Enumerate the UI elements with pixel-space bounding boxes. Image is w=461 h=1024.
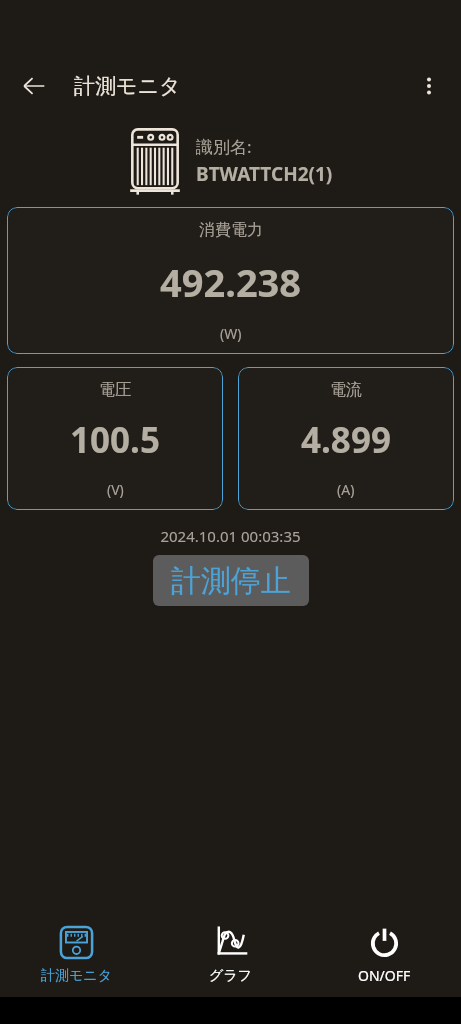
staticText: 4.899	[301, 416, 391, 464]
button[interactable]: Back	[12, 64, 56, 108]
staticText: 消費電力	[199, 220, 263, 240]
staticText: 100.5	[70, 416, 160, 464]
button[interactable]: 計測停止	[153, 555, 309, 606]
button[interactable]: More options	[407, 64, 451, 108]
button[interactable]: Power ON OFF	[307, 922, 461, 985]
button[interactable]: 消費電力	[7, 207, 454, 354]
staticText: (A)	[337, 480, 355, 499]
staticText: 計測モニタ	[74, 73, 181, 99]
staticText: 492.238	[160, 256, 302, 308]
staticText: 計測停止	[171, 562, 291, 600]
staticText: 識別名:	[196, 135, 252, 158]
button[interactable]: 電圧	[7, 367, 223, 510]
staticText: (V)	[107, 480, 124, 499]
staticText: 計測モニタ	[41, 967, 112, 985]
staticText: 2024.10.01 00:03:35	[0, 526, 461, 546]
staticText: グラフ	[209, 967, 252, 985]
staticText: (W)	[220, 324, 242, 343]
other: Graph	[211, 923, 250, 962]
staticText: 電圧	[99, 380, 131, 400]
staticText: BTWATTCH2(1)	[196, 161, 333, 187]
other: Measurement monitor	[57, 923, 96, 962]
button[interactable]: Graph	[153, 923, 307, 985]
staticText: ON/OFF	[358, 966, 411, 985]
button[interactable]: Measurement monitor	[0, 923, 153, 985]
staticText: 電流	[330, 380, 362, 400]
button[interactable]: 電流	[238, 367, 454, 510]
other: Power ON OFF	[365, 922, 404, 961]
